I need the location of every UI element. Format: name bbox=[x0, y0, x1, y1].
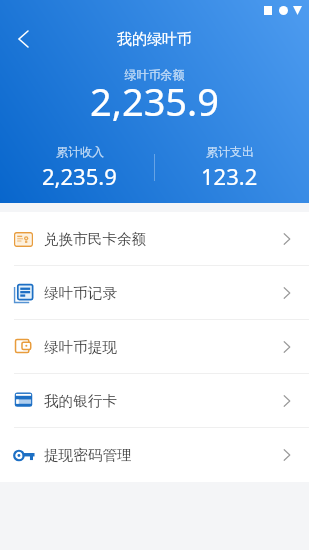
staticText: 我的绿叶币 bbox=[117, 30, 192, 49]
staticText: 123.2 bbox=[201, 161, 258, 191]
staticText: 绿叶币记录 bbox=[44, 284, 117, 302]
button[interactable]: 提现密码管理 bbox=[0, 428, 309, 482]
button[interactable]: 绿叶币提现 bbox=[0, 320, 309, 374]
staticText: 我的银行卡 bbox=[44, 392, 117, 410]
button[interactable]: 兑换市民卡余额 bbox=[0, 212, 309, 266]
button[interactable]: 绿叶币记录 bbox=[0, 266, 309, 320]
staticText: 兑换市民卡余额 bbox=[44, 230, 147, 248]
button[interactable]: 我的银行卡 bbox=[0, 374, 309, 428]
staticText: 累计支出 bbox=[206, 144, 254, 159]
staticText: 绿叶币余额 bbox=[0, 67, 309, 82]
staticText: 提现密码管理 bbox=[44, 446, 132, 464]
staticText: 2,235.9 bbox=[42, 161, 117, 191]
staticText: 累计收入 bbox=[56, 144, 104, 159]
button[interactable]: Back bbox=[0, 21, 42, 57]
staticText: 2,235.9 bbox=[0, 75, 309, 127]
staticText: 绿叶币提现 bbox=[44, 338, 117, 356]
